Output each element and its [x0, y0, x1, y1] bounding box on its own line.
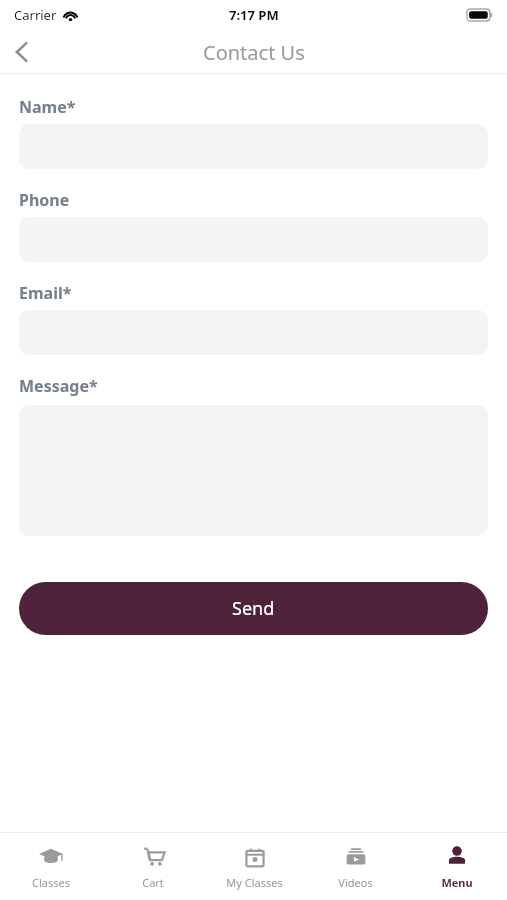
staticText: Message*	[19, 375, 98, 397]
staticText: Email*	[19, 282, 72, 304]
button[interactable]: Back	[0, 30, 44, 74]
button[interactable]: Videos	[305, 833, 406, 900]
staticText: Menu	[441, 875, 473, 890]
button[interactable]: Menu	[406, 833, 507, 900]
staticText: Videos	[338, 875, 373, 890]
button[interactable]: Send	[19, 582, 488, 635]
staticText: 7:17 PM	[229, 6, 279, 24]
staticText: Phone	[19, 189, 70, 211]
staticText: Classes	[32, 875, 70, 890]
staticText: Name*	[19, 96, 76, 118]
staticText: Send	[232, 596, 275, 621]
button[interactable]: My Classes	[204, 833, 305, 900]
staticText: Cart	[142, 875, 164, 890]
button[interactable]: Cart	[102, 833, 204, 900]
staticText: Contact Us	[203, 39, 305, 66]
staticText: My Classes	[226, 875, 283, 890]
staticText: Carrier	[14, 6, 57, 24]
button[interactable]: Classes	[0, 833, 102, 900]
